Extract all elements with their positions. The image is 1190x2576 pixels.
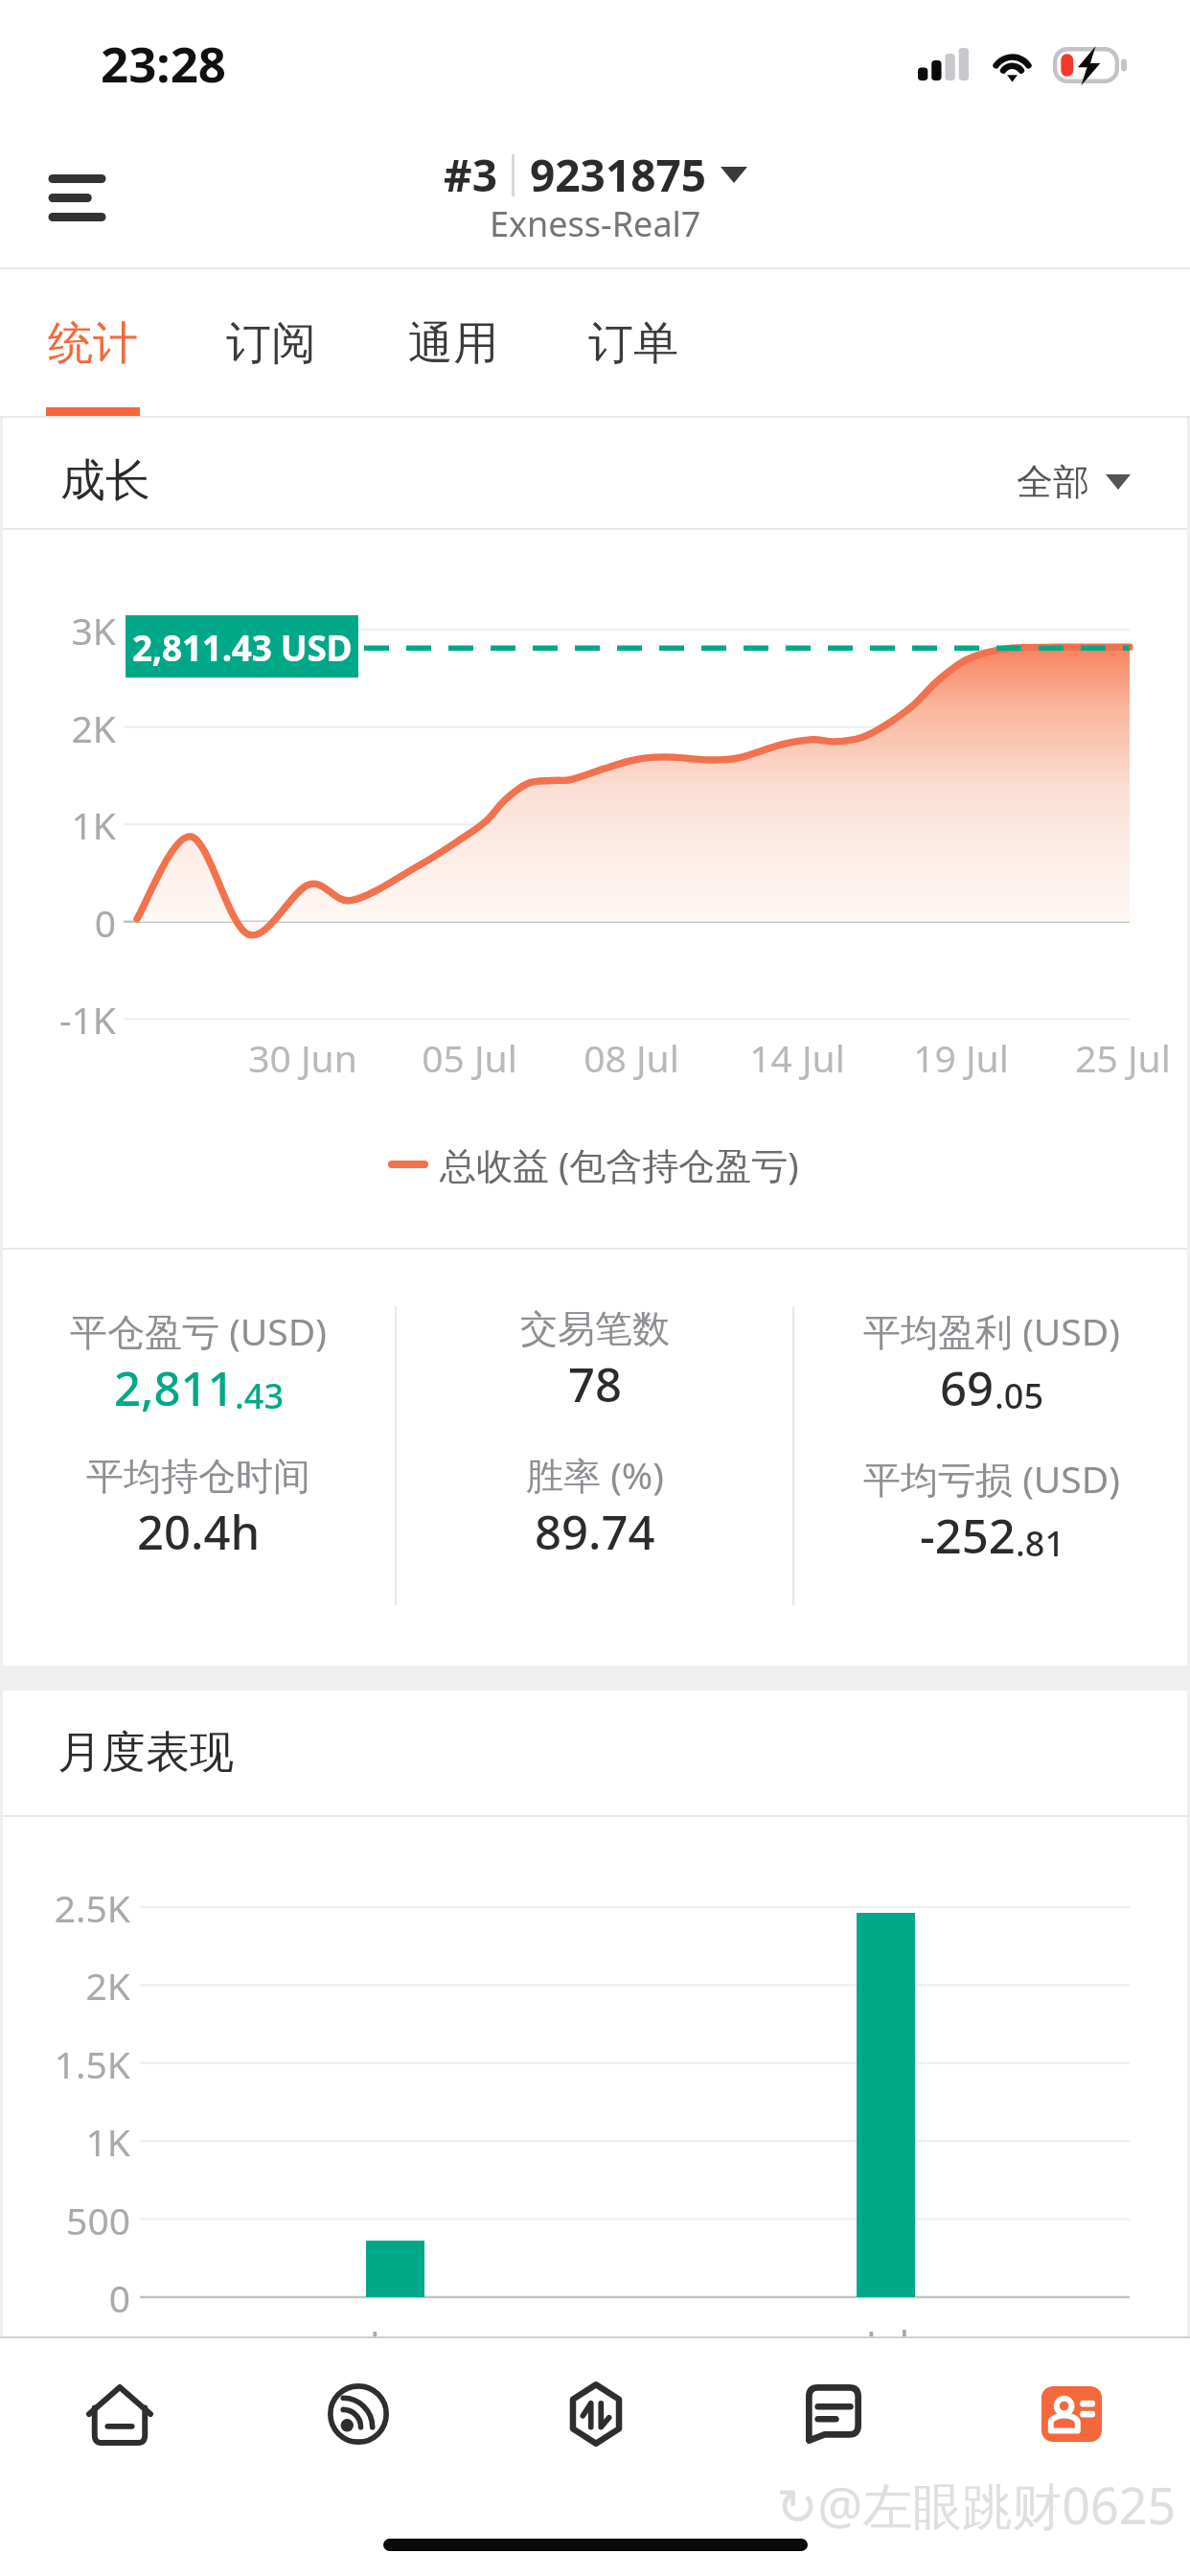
staticText: 平均持仓时间: [86, 1453, 310, 1500]
button[interactable]: Signals: [239, 2338, 477, 2490]
button[interactable]: Trade: [477, 2338, 715, 2490]
button[interactable]: 交易笔数: [397, 1305, 793, 1416]
staticText: 平均盈利 (USD): [863, 1305, 1120, 1356]
staticText: 0: [108, 2272, 130, 2323]
staticText: -1K: [58, 994, 116, 1045]
button[interactable]: 平均亏损 (USD): [793, 1453, 1190, 1568]
button[interactable]: Home: [0, 2338, 239, 2490]
staticText: .43: [235, 1372, 284, 1419]
staticText: 统计: [48, 315, 138, 372]
staticText: 3K: [71, 605, 116, 655]
staticText: 500: [66, 2195, 130, 2245]
staticText: 89.74: [535, 1500, 655, 1564]
staticText: 14 Jul: [749, 1032, 845, 1083]
staticText: Jul: [866, 2317, 909, 2336]
staticText: 2,811: [114, 1356, 235, 1420]
staticText: 20.4h: [137, 1500, 261, 1564]
button[interactable]: 平均持仓时间: [0, 1453, 397, 1564]
staticText: Jun: [370, 2317, 426, 2336]
staticText: 25 Jul: [1075, 1032, 1171, 1083]
button[interactable]: 通用: [406, 269, 500, 416]
staticText: 订阅: [226, 315, 316, 372]
staticText: 69: [940, 1356, 995, 1420]
staticText: 胜率 (%): [526, 1449, 664, 1500]
staticText: 通用: [408, 315, 498, 372]
staticText: 平仓盈亏 (USD): [70, 1305, 327, 1356]
button[interactable]: 订单: [586, 269, 680, 416]
staticText: 交易笔数: [520, 1305, 670, 1352]
button[interactable]: Chat: [715, 2338, 952, 2490]
staticText: 1K: [85, 2116, 130, 2167]
staticText: #3: [444, 145, 498, 205]
staticText: 2K: [71, 702, 116, 753]
button[interactable]: 平均盈利 (USD): [793, 1305, 1190, 1420]
staticText: 0: [94, 897, 116, 948]
staticText: .05: [995, 1372, 1043, 1419]
staticText: 08 Jul: [584, 1032, 679, 1083]
staticText: 平均亏损 (USD): [863, 1453, 1120, 1504]
staticText: 月度表现: [57, 1725, 234, 1781]
button[interactable]: 订阅: [224, 269, 318, 416]
button[interactable]: #3: [444, 145, 747, 252]
staticText: 全部: [1017, 459, 1089, 505]
staticText: 2,811.43 USD: [132, 623, 353, 671]
staticText: -252: [920, 1504, 1016, 1568]
button[interactable]: Menu: [10, 135, 144, 260]
staticText: 78: [568, 1352, 623, 1416]
staticText: 成长: [60, 452, 150, 509]
staticText: 05 Jul: [422, 1032, 517, 1083]
button[interactable]: 平仓盈亏 (USD): [0, 1305, 397, 1420]
staticText: ↻@左眼跳财0625: [776, 2471, 1177, 2539]
staticText: 2.5K: [54, 1882, 130, 1933]
button[interactable]: 全部: [1017, 459, 1131, 505]
staticText: .81: [1016, 1520, 1064, 1567]
staticText: 19 Jul: [913, 1032, 1009, 1083]
staticText: 2K: [85, 1960, 130, 2011]
staticText: 订单: [588, 315, 678, 372]
staticText: 1.5K: [54, 2038, 130, 2089]
staticText: Exness-Real7: [490, 200, 701, 247]
staticText: 9231875: [530, 145, 707, 205]
staticText: 30 Jun: [248, 1032, 357, 1083]
staticText: 总收益 (包含持仓盈亏): [440, 1139, 799, 1189]
staticText: 23:28: [101, 30, 227, 96]
button[interactable]: 统计: [46, 269, 140, 416]
button[interactable]: 胜率 (%): [397, 1449, 793, 1564]
staticText: 1K: [71, 799, 116, 850]
button[interactable]: Account: [952, 2338, 1190, 2490]
